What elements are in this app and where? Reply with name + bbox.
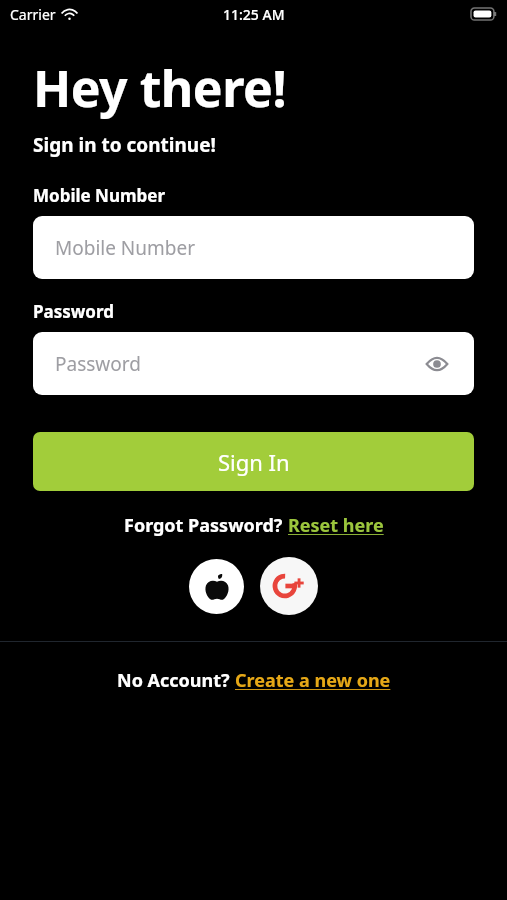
staticText: Mobile Number: [55, 235, 196, 261]
button[interactable]: Reset here: [288, 513, 384, 538]
staticText: Sign in to continue!: [33, 132, 216, 158]
staticText: Carrier: [10, 5, 56, 24]
staticText: 11:25 AM: [223, 5, 285, 24]
staticText: Password: [33, 300, 114, 323]
button[interactable]: Show password: [422, 349, 452, 379]
button[interactable]: Mobile Number: [33, 216, 474, 279]
button[interactable]: Password: [33, 332, 474, 395]
staticText: Create a new one: [235, 668, 391, 693]
staticText: Mobile Number: [33, 184, 166, 207]
staticText: Hey there!: [33, 54, 286, 122]
staticText: Password: [55, 351, 141, 377]
button[interactable]: Sign In: [33, 432, 474, 491]
staticText: Reset here: [288, 513, 384, 538]
button[interactable]: Sign in with Google Plus: [260, 557, 318, 615]
staticText: No Account?: [117, 668, 235, 693]
staticText: Sign In: [218, 447, 290, 477]
staticText: Forgot Password?: [124, 513, 288, 538]
button[interactable]: Sign in with Apple: [189, 559, 244, 614]
button[interactable]: Create a new one: [235, 668, 391, 693]
